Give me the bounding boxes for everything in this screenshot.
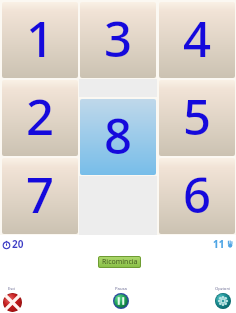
button[interactable]: Pausa (105, 286, 137, 309)
staticText: 11 (213, 237, 225, 251)
other: Opzioni (215, 293, 231, 309)
staticText: 5 (183, 83, 212, 150)
button[interactable]: 6 (159, 158, 235, 234)
button[interactable]: Tempo (2, 237, 24, 251)
staticText: 3 (104, 5, 133, 72)
button[interactable]: Esci (0, 286, 28, 312)
staticText: Esci (8, 286, 16, 292)
button[interactable]: 5 (159, 80, 235, 156)
button[interactable]: 7 (2, 158, 78, 234)
staticText: Pausa (115, 286, 127, 292)
button[interactable]: 8 (80, 99, 156, 175)
staticText: 7 (26, 161, 55, 228)
staticText: 6 (183, 161, 212, 228)
other: Pausa (113, 293, 129, 309)
other: Tempo (2, 240, 11, 249)
staticText: Opzioni (215, 286, 231, 292)
button[interactable]: 2 (2, 80, 78, 156)
other: Esci (3, 293, 22, 312)
staticText: 20 (12, 237, 24, 251)
button[interactable]: 11 (213, 237, 234, 251)
staticText: 4 (183, 5, 212, 72)
staticText: 1 (26, 5, 55, 72)
button[interactable]: 1 (2, 2, 78, 78)
staticText: Ricomincia (102, 257, 138, 267)
button[interactable]: Ricomincia (98, 256, 141, 268)
button[interactable]: 3 (80, 2, 156, 78)
staticText: 8 (104, 102, 133, 169)
staticText: 2 (26, 83, 55, 150)
other: Mosse (226, 240, 234, 248)
button[interactable]: Opzioni (207, 286, 236, 309)
button[interactable]: 4 (159, 2, 235, 78)
